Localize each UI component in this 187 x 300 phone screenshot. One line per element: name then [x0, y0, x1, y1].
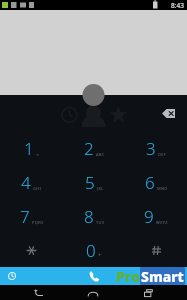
staticText: ∞ [36, 152, 40, 157]
staticText: 9 [144, 205, 154, 228]
staticText: MNO [157, 186, 168, 191]
staticText: 4 [21, 171, 31, 194]
button[interactable]: 5 [63, 165, 125, 199]
button[interactable]: 7 [0, 199, 63, 233]
button[interactable]: 1 [0, 131, 63, 165]
staticText: 0 [86, 239, 96, 262]
staticText: 8:43 [171, 1, 184, 10]
button[interactable]: Delete [157, 104, 179, 122]
staticText: WXYZ [156, 220, 168, 225]
button[interactable]: Recent apps [135, 285, 161, 300]
staticText: 5 [85, 171, 95, 194]
button[interactable]: 2 [63, 131, 125, 165]
button[interactable]: 9 [125, 199, 187, 233]
button[interactable]: 3 [125, 131, 187, 165]
staticText: Pro [116, 267, 140, 285]
staticText: ABC [96, 152, 105, 157]
staticText: + [98, 251, 102, 259]
button[interactable]: 6 [125, 165, 187, 199]
staticText: JKL [97, 186, 104, 191]
button[interactable]: 0 [63, 233, 125, 267]
staticText: 2 [84, 137, 94, 160]
staticText: PQRS [32, 220, 44, 225]
staticText: GHI [33, 186, 42, 191]
staticText: 3 [146, 137, 156, 160]
button[interactable] [125, 233, 187, 267]
button[interactable]: Call [68, 267, 120, 285]
staticText: 6 [145, 171, 155, 194]
staticText: 1 [24, 137, 34, 160]
button[interactable]: Back [25, 285, 51, 300]
button[interactable] [0, 233, 63, 267]
staticText: 7 [20, 205, 30, 228]
staticText: 8 [84, 205, 94, 228]
staticText: DEF [158, 152, 167, 157]
button[interactable]: 4 [0, 165, 63, 199]
staticText: TUV [96, 220, 105, 225]
staticText: Smart [141, 267, 184, 285]
button[interactable]: Call log [4, 268, 20, 284]
button[interactable]: 8 [63, 199, 125, 233]
button[interactable]: Home [80, 285, 106, 300]
